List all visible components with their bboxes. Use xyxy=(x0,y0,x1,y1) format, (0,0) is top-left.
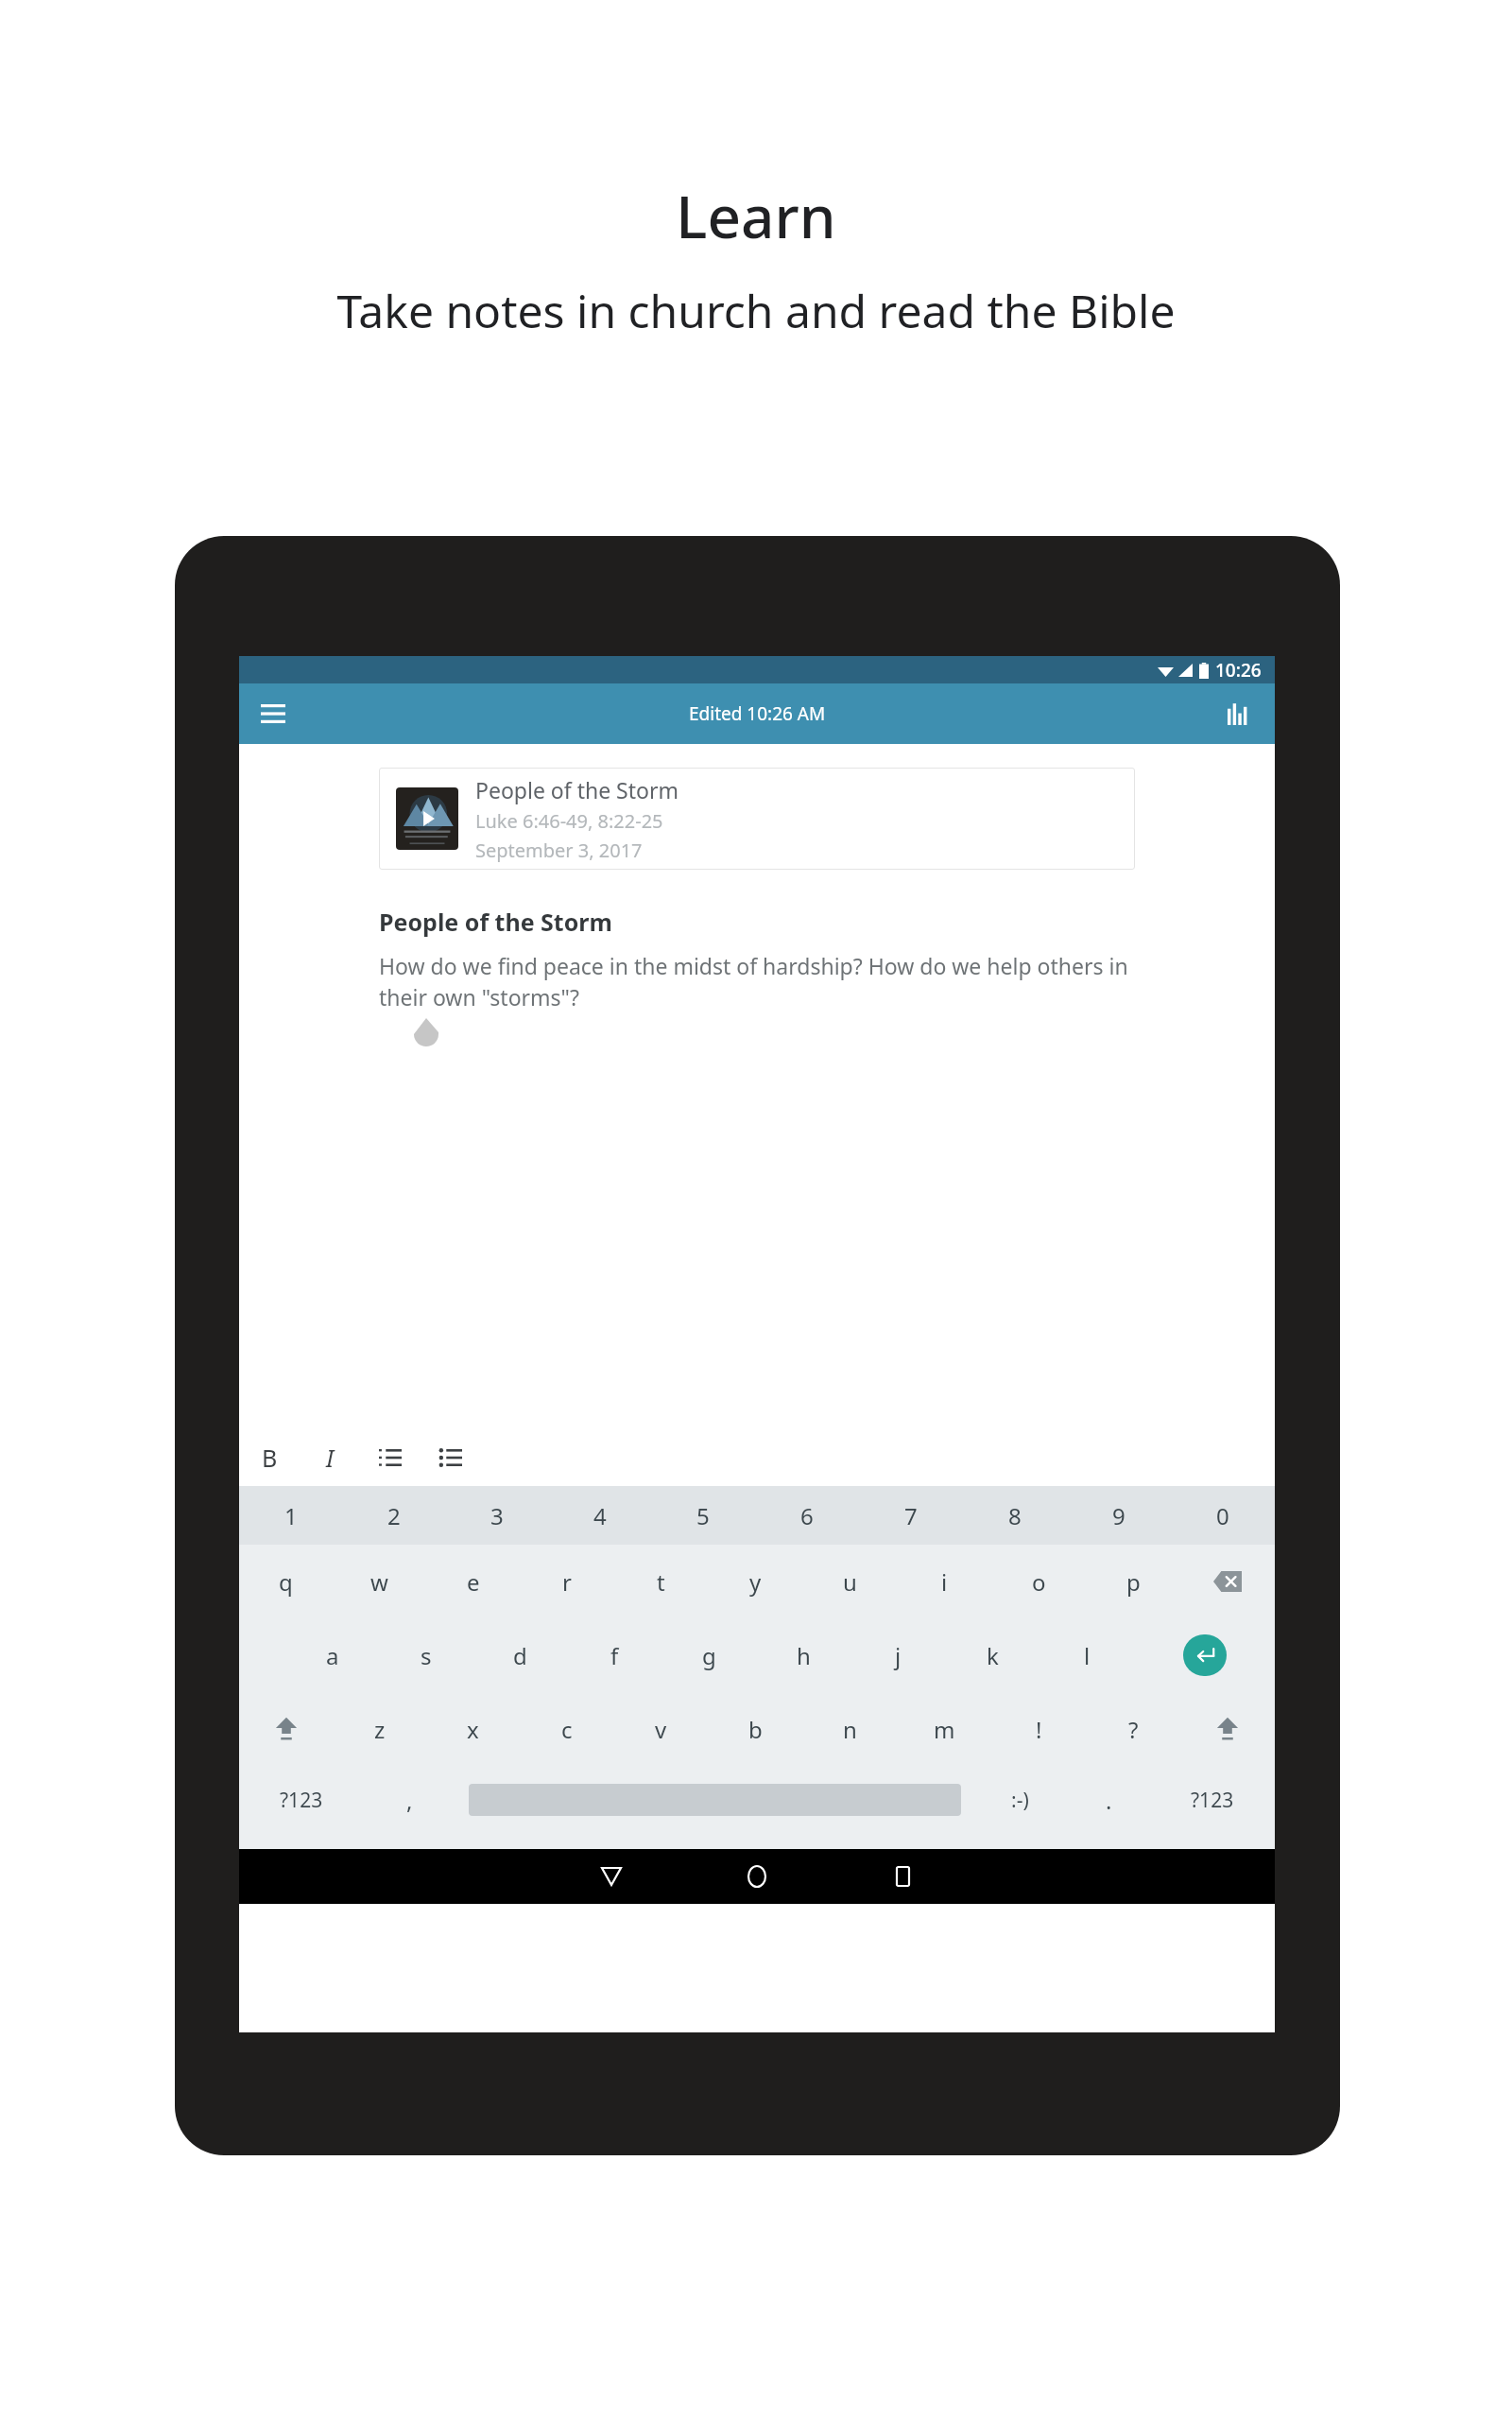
staticText: 8 xyxy=(1008,1500,1022,1531)
staticText: s xyxy=(421,1640,432,1671)
button[interactable]: l xyxy=(1039,1618,1134,1692)
staticText: z xyxy=(374,1714,386,1745)
button[interactable]: 0 xyxy=(1171,1486,1275,1545)
button[interactable]: People of the Storm xyxy=(379,768,1135,870)
button[interactable]: u xyxy=(802,1545,897,1618)
button[interactable]: ?123 xyxy=(239,1766,363,1834)
button[interactable]: Shift xyxy=(239,1692,333,1766)
staticText: 3 xyxy=(490,1500,504,1531)
button[interactable]: Recent apps xyxy=(881,1855,924,1898)
button[interactable]: Bulleted list xyxy=(430,1437,472,1478)
button[interactable]: Shift xyxy=(1180,1692,1275,1766)
staticText: i xyxy=(941,1566,948,1598)
staticText: x xyxy=(467,1714,479,1745)
staticText: , xyxy=(406,1785,413,1816)
staticText: September 3, 2017 xyxy=(475,838,643,863)
staticText: b xyxy=(748,1714,763,1745)
staticText: o xyxy=(1032,1566,1046,1598)
staticText: ? xyxy=(1128,1714,1139,1745)
button[interactable]: 6 xyxy=(755,1486,859,1545)
button[interactable]: Space xyxy=(455,1766,973,1834)
button[interactable]: k xyxy=(945,1618,1039,1692)
staticText: 6 xyxy=(800,1500,814,1531)
staticText: ?123 xyxy=(280,1787,323,1814)
staticText: 5 xyxy=(696,1500,710,1531)
staticText: g xyxy=(702,1640,716,1671)
staticText: t xyxy=(657,1566,665,1598)
staticText: n xyxy=(843,1714,857,1745)
button[interactable]: Back xyxy=(590,1855,633,1898)
staticText: B xyxy=(262,1442,278,1474)
button[interactable]: g xyxy=(661,1618,756,1692)
staticText: Learn xyxy=(676,176,836,255)
staticText: m xyxy=(934,1714,955,1745)
button[interactable]: e xyxy=(426,1545,520,1618)
staticText: 7 xyxy=(904,1500,918,1531)
button[interactable]: n xyxy=(802,1692,897,1766)
button[interactable]: Bold xyxy=(249,1437,290,1478)
button[interactable]: 8 xyxy=(963,1486,1067,1545)
staticText: w xyxy=(370,1566,388,1598)
staticText: 4 xyxy=(593,1500,607,1531)
staticText: q xyxy=(279,1566,293,1598)
staticText: f xyxy=(610,1640,619,1671)
button[interactable]: a xyxy=(285,1618,379,1692)
button[interactable]: . xyxy=(1067,1766,1150,1834)
button[interactable]: r xyxy=(520,1545,613,1618)
button[interactable]: h xyxy=(756,1618,850,1692)
button[interactable]: c xyxy=(520,1692,613,1766)
staticText: l xyxy=(1084,1640,1091,1671)
button[interactable]: s xyxy=(379,1618,472,1692)
button[interactable]: 4 xyxy=(548,1486,651,1545)
staticText: Luke 6:46-49, 8:22-25 xyxy=(475,808,663,834)
staticText: r xyxy=(562,1566,572,1598)
button[interactable]: 5 xyxy=(651,1486,755,1545)
button[interactable]: 1 xyxy=(239,1486,342,1545)
button[interactable]: Home xyxy=(735,1855,779,1898)
button[interactable]: w xyxy=(333,1545,426,1618)
button[interactable]: j xyxy=(850,1618,945,1692)
staticText: :-) xyxy=(1011,1787,1029,1814)
button[interactable]: f xyxy=(567,1618,661,1692)
button[interactable]: i xyxy=(897,1545,991,1618)
button[interactable]: x xyxy=(426,1692,520,1766)
button[interactable]: 2 xyxy=(342,1486,445,1545)
button[interactable]: 3 xyxy=(445,1486,548,1545)
staticText: v xyxy=(655,1714,667,1745)
staticText: 10:26 xyxy=(1215,658,1262,683)
staticText: I xyxy=(326,1442,335,1474)
staticText: j xyxy=(895,1640,902,1671)
button[interactable]: 9 xyxy=(1067,1486,1171,1545)
button[interactable]: Backspace xyxy=(1180,1545,1275,1618)
button[interactable]: , xyxy=(363,1766,455,1834)
button[interactable]: q xyxy=(239,1545,333,1618)
staticText: ?123 xyxy=(1191,1787,1234,1814)
button[interactable]: o xyxy=(991,1545,1086,1618)
button[interactable]: t xyxy=(613,1545,708,1618)
button[interactable]: ? xyxy=(1086,1692,1180,1766)
button[interactable]: 7 xyxy=(859,1486,963,1545)
button[interactable]: v xyxy=(613,1692,708,1766)
staticText: People of the Storm xyxy=(379,906,612,938)
button[interactable]: z xyxy=(333,1692,426,1766)
staticText: 2 xyxy=(387,1500,401,1531)
button[interactable]: p xyxy=(1086,1545,1180,1618)
button[interactable]: Numbered list xyxy=(369,1437,411,1478)
button[interactable]: Italic xyxy=(309,1437,351,1478)
button[interactable]: ! xyxy=(991,1692,1086,1766)
button[interactable]: Enter xyxy=(1134,1618,1275,1692)
button[interactable]: b xyxy=(708,1692,802,1766)
staticText: 9 xyxy=(1112,1500,1125,1531)
button[interactable]: d xyxy=(472,1618,567,1692)
staticText: People of the Storm xyxy=(475,775,679,804)
button[interactable]: ?123 xyxy=(1150,1766,1275,1834)
button[interactable]: m xyxy=(897,1692,991,1766)
staticText: e xyxy=(467,1566,480,1598)
staticText: d xyxy=(513,1640,527,1671)
staticText: c xyxy=(561,1714,573,1745)
button[interactable]: y xyxy=(708,1545,802,1618)
button[interactable]: Open navigation menu xyxy=(250,691,296,736)
staticText: h xyxy=(797,1640,811,1671)
button[interactable]: Statistics xyxy=(1216,691,1262,736)
button[interactable]: :-) xyxy=(973,1766,1067,1834)
